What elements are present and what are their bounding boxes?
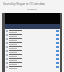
button[interactable] xyxy=(5,37,60,41)
button[interactable] xyxy=(5,53,60,57)
button[interactable] xyxy=(5,61,60,65)
button[interactable] xyxy=(5,33,60,37)
button[interactable] xyxy=(5,29,60,33)
button[interactable] xyxy=(5,49,60,53)
button[interactable] xyxy=(5,57,60,61)
staticText: numbers xyxy=(27,8,37,11)
button[interactable] xyxy=(5,65,60,69)
button[interactable] xyxy=(5,45,60,49)
button[interactable] xyxy=(5,41,60,45)
staticText: Sound by Rogue or CO window xyxy=(3,2,45,6)
